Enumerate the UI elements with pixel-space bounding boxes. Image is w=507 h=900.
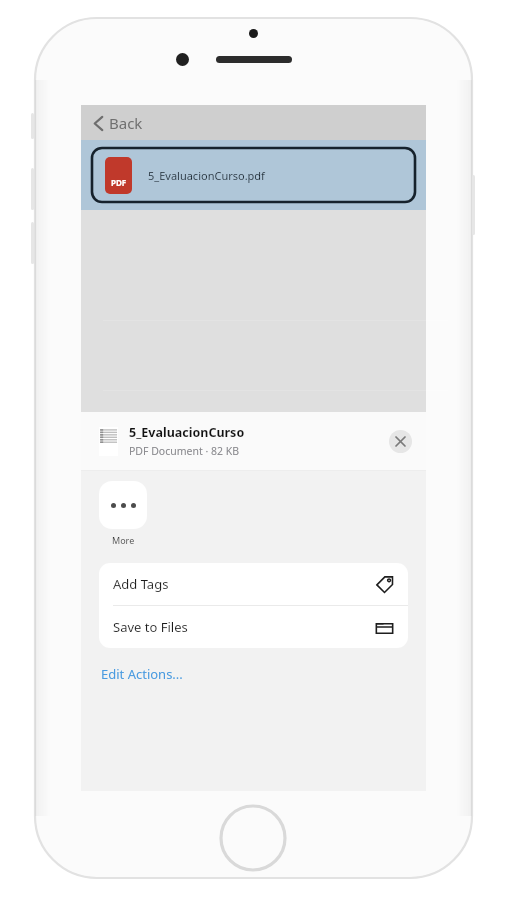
staticText: Save to Files <box>113 618 188 636</box>
staticText: Edit Actions... <box>101 665 183 683</box>
other: Folder <box>375 618 394 637</box>
staticText: More <box>112 534 135 546</box>
staticText: 5_EvaluacionCurso.pdf <box>148 168 265 183</box>
other: Tag <box>375 575 394 594</box>
staticText: Add Tags <box>113 575 169 593</box>
button[interactable]: Back <box>91 109 146 137</box>
button[interactable]: Edit Actions... <box>99 661 185 687</box>
button[interactable]: Save to Files <box>99 606 408 648</box>
staticText: PDF <box>111 177 127 188</box>
button[interactable]: Add Tags <box>99 563 408 605</box>
staticText: 5_EvaluacionCurso <box>129 424 245 441</box>
button[interactable]: More <box>99 481 147 546</box>
button[interactable]: Close <box>389 430 412 453</box>
button[interactable]: PDF <box>81 140 426 210</box>
staticText: PDF Document · 82 KB <box>129 444 240 458</box>
staticText: Back <box>109 113 143 133</box>
